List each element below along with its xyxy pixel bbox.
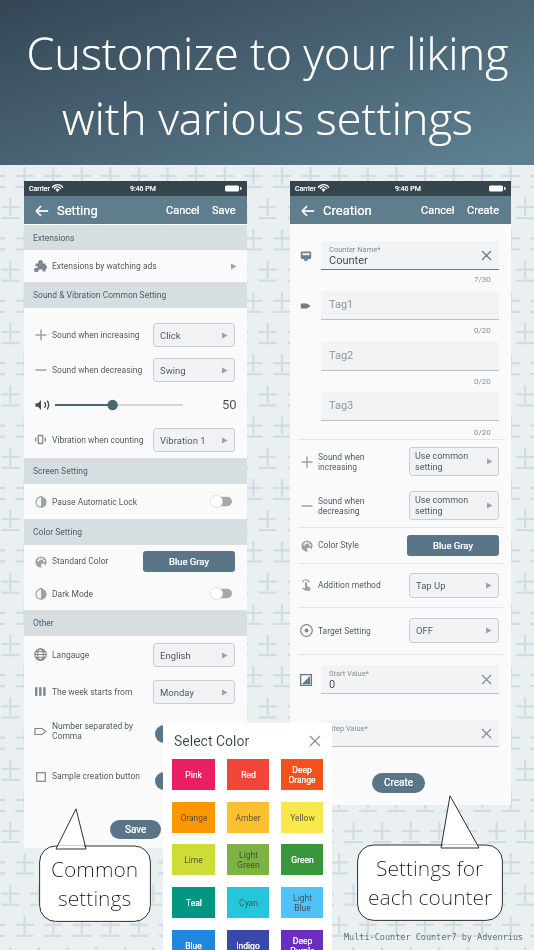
staticText: 9:46 PM [130, 185, 156, 193]
button[interactable]: Color Style [290, 527, 511, 563]
button[interactable]: Step Value* [321, 720, 499, 747]
button[interactable]: Blue Gray [407, 535, 499, 556]
staticText: Sound when increasing [52, 330, 140, 340]
staticText: Counter Name* [329, 245, 381, 254]
staticText: Cancel [166, 204, 200, 217]
staticText: OFF [416, 625, 434, 636]
button[interactable]: OFF [409, 618, 499, 643]
staticText: Extensions by watching ads [52, 261, 157, 271]
button[interactable]: Toggle [210, 587, 233, 600]
button[interactable]: Toggle [155, 772, 211, 790]
staticText: Step Value* [329, 724, 368, 733]
staticText: 0 [329, 678, 336, 691]
button[interactable]: Indigo [227, 930, 269, 950]
staticText: Carrier [29, 185, 50, 193]
staticText: Color Setting [33, 527, 82, 537]
staticText: Creation [323, 203, 372, 218]
button[interactable]: Clear [479, 248, 493, 262]
button[interactable]: Sound when decreasing [24, 352, 247, 387]
button[interactable]: Monday [153, 680, 235, 704]
staticText: Light Blue [293, 893, 312, 913]
button[interactable]: The week starts from [24, 673, 247, 710]
staticText: Blue Gray [433, 540, 473, 551]
button[interactable]: Use common setting [409, 447, 499, 476]
button[interactable]: Pink [172, 759, 215, 790]
staticText: Settings for [376, 854, 484, 883]
button[interactable]: Light Green [227, 844, 269, 875]
button[interactable]: Vibration 1 [153, 428, 235, 452]
button[interactable]: Toggle [155, 725, 211, 743]
staticText: Multi-Counter Counter7 by Advenrius [344, 932, 524, 942]
staticText: Color Style [318, 540, 359, 550]
staticText: Addition method [318, 580, 381, 590]
button[interactable]: Sound when increasing [290, 439, 511, 484]
button[interactable]: Dark Mode [24, 577, 247, 610]
button[interactable]: Tap Up [409, 573, 499, 598]
button[interactable]: Blue Gray [143, 551, 235, 572]
button[interactable]: Clear [479, 726, 493, 740]
button[interactable]: Cancel [163, 200, 203, 221]
staticText: Dark Mode [52, 589, 94, 599]
button[interactable]: Cancel [418, 200, 458, 221]
button[interactable]: Number separated by Comma [24, 710, 247, 752]
staticText: Create [384, 777, 414, 789]
staticText: Carrier [295, 185, 316, 193]
button[interactable]: Pause Automatic Lock [24, 484, 247, 519]
staticText: Red [241, 770, 256, 780]
button[interactable]: Sample creation button [24, 752, 247, 800]
staticText: Vibration 1 [160, 435, 206, 446]
staticText: Monday [160, 687, 194, 698]
button[interactable]: Yellow [281, 802, 323, 833]
staticText: Lime [184, 855, 203, 865]
button[interactable]: Cyan [227, 887, 269, 918]
button[interactable]: Green [281, 844, 323, 875]
button[interactable]: Counter Name* [321, 241, 499, 270]
button[interactable]: Clear [479, 672, 493, 686]
button[interactable]: Orange [172, 802, 215, 833]
staticText: Cyan [239, 898, 258, 908]
button[interactable]: Extensions by watching ads [24, 250, 247, 282]
staticText: Other [33, 618, 54, 628]
button[interactable]: Teal [172, 887, 215, 918]
staticText: Swing [160, 365, 186, 376]
button[interactable]: Use common setting [409, 491, 499, 520]
staticText: Sound when decreasing [52, 365, 143, 375]
button[interactable]: Save [110, 820, 161, 839]
button[interactable]: Addition method [290, 563, 511, 607]
staticText: 0/20 [474, 326, 491, 335]
button[interactable]: Create [372, 773, 425, 793]
button[interactable]: Target Setting [290, 607, 511, 654]
button[interactable]: Tag2 [321, 342, 499, 371]
button[interactable]: Back [299, 202, 316, 219]
button[interactable]: Standard Color [24, 545, 247, 577]
button[interactable]: Vibration when counting [24, 422, 247, 457]
staticText: Counter [329, 254, 368, 267]
staticText: Use common setting [415, 495, 469, 517]
button[interactable]: Sound when increasing [24, 317, 247, 352]
button[interactable]: Start Value* [321, 665, 499, 694]
button[interactable]: Create [464, 200, 503, 221]
button[interactable]: Click [153, 323, 235, 347]
staticText: Blue Gray [169, 556, 209, 567]
button[interactable]: Deep Orange [281, 759, 323, 790]
button[interactable]: Deep Purple [281, 930, 323, 950]
button[interactable]: Lime [172, 844, 215, 875]
staticText: Sound & Vibration Common Setting [33, 290, 167, 300]
button[interactable]: Close [307, 733, 323, 749]
button[interactable]: Save [209, 200, 239, 221]
staticText: Screen Setting [33, 466, 88, 476]
button[interactable]: Red [227, 759, 269, 790]
button[interactable]: Toggle [210, 495, 233, 508]
staticText: Orange [180, 813, 208, 823]
button[interactable]: Tag1 [321, 291, 499, 320]
staticText: Target Setting [318, 626, 371, 636]
button[interactable]: Blue [172, 930, 215, 950]
button[interactable]: Tag3 [321, 392, 499, 421]
button[interactable]: Swing [153, 358, 235, 382]
button[interactable]: Langauge [24, 636, 247, 673]
button[interactable]: Light Blue [281, 887, 323, 918]
button[interactable]: Back [33, 202, 50, 219]
button[interactable]: Sound when decreasing [290, 484, 511, 527]
button[interactable]: English [153, 643, 235, 667]
button[interactable]: Amber [227, 802, 269, 833]
